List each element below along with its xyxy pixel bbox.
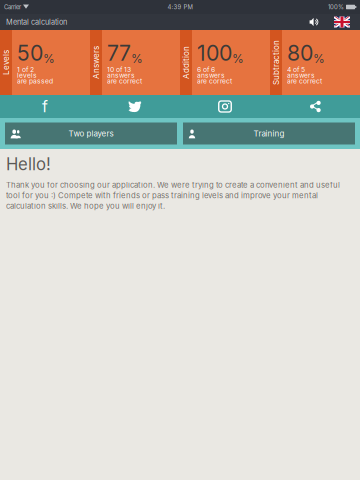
staticText: 77 (107, 40, 131, 66)
staticText: Hello! (6, 154, 51, 174)
staticText: % (131, 51, 143, 66)
staticText: 10 of 13 (107, 66, 131, 74)
staticText: are correct (197, 77, 232, 85)
staticText: Levels (0, 58, 18, 67)
button[interactable]: Twitter (90, 95, 180, 118)
staticText: 100% (328, 3, 344, 11)
button[interactable]: Facebook (0, 95, 90, 118)
button[interactable]: Language (334, 14, 350, 30)
staticText: 80 (287, 40, 313, 66)
staticText: Two players (68, 129, 113, 138)
staticText: 6 of 6 (197, 66, 215, 74)
staticText: Mental calculation (6, 18, 67, 26)
staticText: f (42, 97, 48, 116)
button[interactable]: Sound (309, 14, 320, 30)
staticText: Training (253, 129, 284, 138)
staticText: answers (287, 71, 315, 79)
staticText: are passed (17, 77, 53, 85)
button[interactable]: Two players (5, 122, 177, 144)
staticText: 1 of 2 (17, 66, 34, 74)
button[interactable]: Instagram (180, 95, 270, 118)
button[interactable]: Share (270, 95, 360, 118)
staticText: 4:39 PM (167, 3, 192, 11)
staticText: Subtraction (253, 58, 298, 67)
staticText: are correct (287, 77, 322, 85)
staticText: 50 (17, 40, 43, 66)
staticText: are correct (107, 77, 142, 85)
staticText: Carrier (4, 3, 21, 11)
staticText: % (43, 51, 55, 66)
staticText: answers (107, 71, 135, 79)
staticText: 100 (197, 40, 232, 66)
staticText: Addition (169, 58, 202, 67)
staticText: 4 of 5 (287, 66, 305, 74)
staticText: % (313, 51, 325, 66)
staticText: % (232, 51, 244, 66)
staticText: Answers (79, 58, 112, 67)
staticText: Thank you for choosing our application. … (6, 180, 340, 211)
staticText: answers (197, 71, 225, 79)
staticText: levels (17, 71, 37, 79)
button[interactable]: Training (183, 122, 355, 144)
